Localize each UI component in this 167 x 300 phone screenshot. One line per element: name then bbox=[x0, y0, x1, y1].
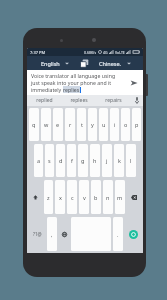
staticText: VoLTE bbox=[115, 50, 125, 55]
staticText: 0.68K/s bbox=[84, 50, 97, 55]
button[interactable]: English bbox=[31, 60, 79, 67]
staticText: v bbox=[83, 194, 86, 201]
staticText: replies bbox=[63, 86, 80, 93]
button[interactable]: Backspace bbox=[127, 180, 141, 214]
button[interactable]: q bbox=[29, 108, 39, 141]
staticText: b bbox=[94, 194, 98, 201]
button[interactable]: Chinese. bbox=[90, 60, 139, 67]
button[interactable]: Emoji bbox=[59, 217, 69, 251]
staticText: e bbox=[56, 121, 60, 128]
staticText: a bbox=[37, 157, 41, 164]
button[interactable]: Enter bbox=[129, 230, 138, 239]
button[interactable]: . bbox=[113, 217, 123, 251]
button[interactable]: u bbox=[99, 108, 108, 141]
button[interactable]: e bbox=[53, 108, 63, 141]
staticText: p bbox=[135, 121, 139, 128]
staticText: j bbox=[106, 157, 108, 164]
staticText: t bbox=[81, 121, 83, 128]
button[interactable]: z bbox=[44, 180, 53, 214]
button[interactable]: replied bbox=[27, 95, 61, 106]
staticText: d bbox=[59, 157, 63, 164]
staticText: immediately bbox=[31, 86, 63, 93]
button[interactable]: w bbox=[41, 108, 51, 141]
staticText: f bbox=[71, 157, 73, 164]
staticText: replied bbox=[36, 97, 53, 104]
staticText: i bbox=[114, 121, 116, 128]
staticText: w bbox=[44, 121, 49, 128]
staticText: English bbox=[41, 60, 60, 67]
button[interactable]: m bbox=[115, 180, 125, 214]
button[interactable]: c bbox=[67, 180, 77, 214]
button[interactable]: Send bbox=[128, 77, 140, 89]
staticText: u bbox=[102, 121, 106, 128]
staticText: h bbox=[93, 157, 97, 164]
button[interactable]: t bbox=[77, 108, 86, 141]
staticText: o bbox=[124, 121, 128, 128]
staticText: q bbox=[32, 121, 36, 128]
button[interactable]: f bbox=[67, 144, 76, 177]
staticText: l bbox=[130, 157, 132, 164]
staticText: replees bbox=[70, 97, 88, 104]
staticText: just speak into your phone and it bbox=[31, 79, 112, 86]
staticText: x bbox=[59, 194, 62, 201]
staticText: c bbox=[71, 194, 74, 201]
staticText: s bbox=[48, 157, 51, 164]
button[interactable]: x bbox=[55, 180, 65, 214]
button[interactable]: Swap languages bbox=[79, 58, 90, 69]
staticText: k bbox=[118, 157, 121, 164]
staticText: 4G bbox=[103, 50, 108, 55]
staticText: , bbox=[51, 231, 53, 238]
button[interactable]: Voice input bbox=[131, 95, 143, 106]
button[interactable]: replees bbox=[61, 95, 96, 106]
staticText: . bbox=[117, 231, 119, 238]
button[interactable]: p bbox=[132, 108, 141, 141]
button[interactable]: , bbox=[47, 217, 57, 251]
button[interactable]: Shift bbox=[29, 180, 42, 214]
staticText: repairs bbox=[105, 97, 122, 104]
button[interactable]: i bbox=[110, 108, 119, 141]
staticText: z bbox=[47, 194, 50, 201]
button[interactable]: g bbox=[78, 144, 88, 177]
staticText: Voice translator all language using bbox=[31, 72, 116, 79]
button[interactable]: n bbox=[103, 180, 113, 214]
button[interactable]: v bbox=[79, 180, 89, 214]
button[interactable]: d bbox=[56, 144, 65, 177]
button[interactable]: l bbox=[126, 144, 136, 177]
staticText: Chinese. bbox=[99, 60, 122, 67]
button[interactable]: Symbols bbox=[29, 217, 45, 251]
button[interactable]: k bbox=[114, 144, 124, 177]
button[interactable]: h bbox=[90, 144, 100, 177]
staticText: y bbox=[91, 121, 94, 128]
button[interactable]: j bbox=[102, 144, 112, 177]
button[interactable]: s bbox=[45, 144, 54, 177]
staticText: r bbox=[69, 121, 72, 128]
staticText: g bbox=[81, 157, 85, 164]
staticText: ?1@ bbox=[33, 231, 42, 237]
button[interactable]: r bbox=[65, 108, 75, 141]
button[interactable]: y bbox=[88, 108, 97, 141]
button[interactable]: b bbox=[91, 180, 101, 214]
button[interactable]: repairs bbox=[96, 95, 131, 106]
staticText: m bbox=[117, 194, 123, 201]
button[interactable]: o bbox=[121, 108, 130, 141]
staticText: n bbox=[106, 194, 110, 201]
staticText: 7:37 PM bbox=[30, 50, 46, 55]
button[interactable]: a bbox=[34, 144, 43, 177]
